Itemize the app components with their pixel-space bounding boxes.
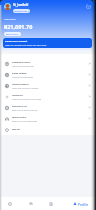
staticText: Referral ₦0.00 [6,33,19,35]
staticText: Secure your account by changing [12,87,39,89]
staticText: Update your transaction pin anytime [12,98,42,100]
staticText: Make your account more secure with extra… [5,44,47,46]
staticText: Reach out to our available team [12,120,38,122]
staticText: Support Center [12,116,27,119]
button[interactable]: History [41,197,61,210]
staticText: View your transaction limits [12,65,34,67]
button[interactable]: Secure your account [3,38,92,48]
button[interactable]: Update Password [0,80,96,91]
button[interactable]: Upgrade to Tier 1 [13,9,30,13]
staticText: Upgrade to Tier 1 [14,10,29,12]
staticText: Developer's API [12,105,27,108]
staticText: Update Password [12,83,29,86]
button[interactable]: Support Center [0,113,96,124]
staticText: Hi, Jamilah! [13,3,29,7]
button[interactable]: Transaction History [0,58,96,69]
button[interactable]: Profile [72,201,90,207]
button[interactable]: Cards [20,197,41,210]
staticText: Profile [78,202,89,206]
button[interactable]: Profile avatar [4,3,11,10]
button[interactable]: Home [0,197,20,210]
button[interactable]: Developer's API [0,102,96,113]
staticText: Sign out [12,128,20,131]
button[interactable]: Notifications [86,4,91,9]
button[interactable]: Update PIN [0,91,96,102]
staticText: Total Balance [4,18,16,21]
button[interactable]: Sign out [0,124,96,135]
staticText: Update PIN [12,94,23,97]
staticText: Transaction History [12,61,31,64]
staticText: ₦21,691.70 [4,23,33,30]
staticText: Easily test our api and other sdk [12,109,38,111]
button[interactable]: Referral ₦0.00 [4,32,21,36]
staticText: Secure your account [5,40,28,43]
staticText: Profile Settings [12,72,27,75]
staticText: Update your profile details [12,76,34,78]
button[interactable]: Profile Settings [0,69,96,80]
